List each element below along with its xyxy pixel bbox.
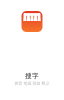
staticText: 拼音 笔画 部首 释义	[14, 81, 49, 86]
staticText: 搜字	[25, 72, 39, 80]
